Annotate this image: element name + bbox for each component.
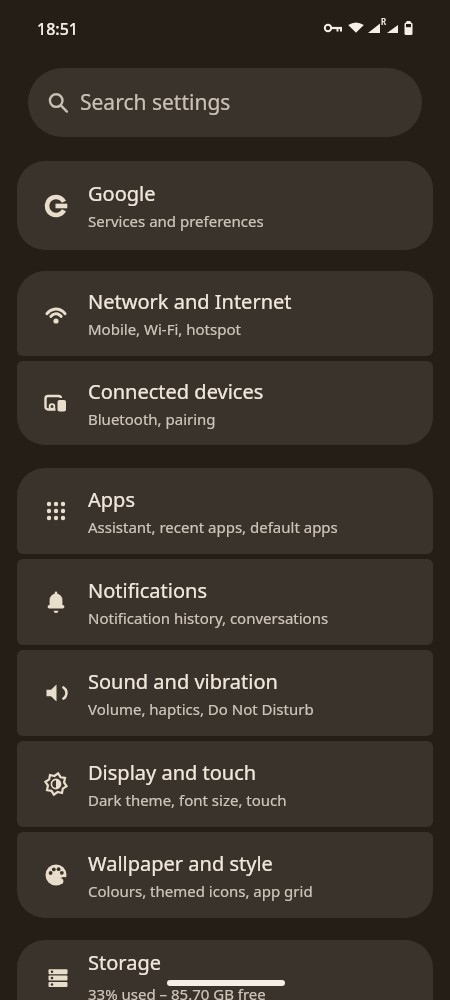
staticText: Search settings bbox=[80, 88, 231, 117]
staticText: Services and preferences bbox=[88, 211, 264, 231]
staticText: Colours, themed icons, app grid bbox=[88, 881, 313, 901]
staticText: Storage bbox=[88, 949, 161, 976]
button[interactable]: Google bbox=[17, 161, 433, 250]
button[interactable]: Apps bbox=[17, 468, 433, 554]
button[interactable]: Sound and vibration bbox=[17, 650, 433, 736]
button[interactable]: Notifications bbox=[17, 559, 433, 645]
staticText: 18:51 bbox=[37, 18, 78, 40]
staticText: Mobile, Wi-Fi, hotspot bbox=[88, 319, 241, 339]
staticText: Notification history, conversations bbox=[88, 608, 329, 628]
staticText: Display and touch bbox=[88, 759, 257, 786]
button[interactable]: Wallpaper and style bbox=[17, 832, 433, 918]
staticText: Network and Internet bbox=[88, 288, 292, 315]
button[interactable]: Connected devices bbox=[17, 361, 433, 445]
staticText: Connected devices bbox=[88, 378, 264, 405]
staticText: Wallpaper and style bbox=[88, 850, 273, 877]
staticText: Google bbox=[88, 180, 156, 207]
button[interactable]: Display and touch bbox=[17, 741, 433, 827]
staticText: Bluetooth, pairing bbox=[88, 409, 216, 429]
button[interactable]: Storage bbox=[17, 940, 433, 1000]
staticText: Notifications bbox=[88, 577, 207, 604]
staticText: Sound and vibration bbox=[88, 668, 278, 695]
staticText: Dark theme, font size, touch bbox=[88, 790, 287, 810]
staticText: Apps bbox=[88, 486, 135, 513]
button[interactable]: Search settings bbox=[28, 68, 422, 137]
staticText: R bbox=[381, 16, 387, 27]
staticText: Volume, haptics, Do Not Disturb bbox=[88, 699, 314, 719]
staticText: Assistant, recent apps, default apps bbox=[88, 517, 338, 537]
staticText: 33% used – 85.70 GB free bbox=[88, 984, 266, 1000]
button[interactable]: Network and Internet bbox=[17, 271, 433, 356]
